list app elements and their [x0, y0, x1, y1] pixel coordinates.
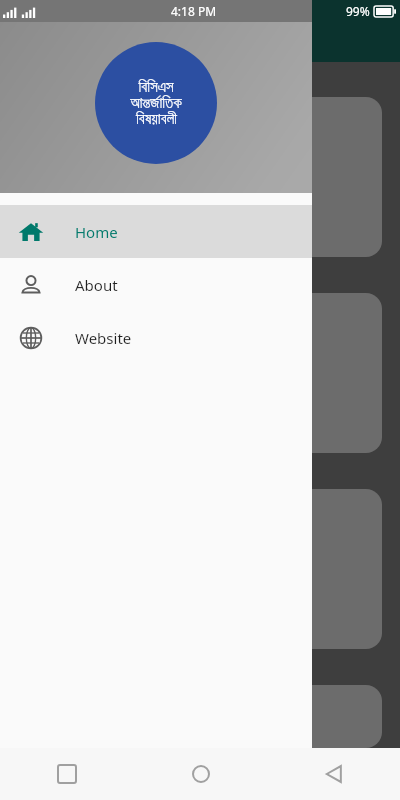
button[interactable]: Recent apps [0, 748, 134, 800]
button[interactable] [18, 685, 382, 748]
button[interactable]: হাজার হাজার [18, 293, 382, 453]
staticText: হাজার হাজার [40, 339, 107, 362]
staticText: আন্তর্জাতিক [130, 96, 182, 111]
button[interactable]: About [0, 258, 312, 311]
staticText: বিষয়াবলী প্রশ্ন [40, 174, 108, 197]
staticText: Website [75, 328, 132, 348]
staticText: বিষয়াবলী [136, 112, 177, 127]
staticText: বিসিএস [138, 80, 174, 95]
staticText: 99% [346, 3, 370, 19]
staticText: About [75, 275, 118, 295]
staticText: Home [75, 222, 118, 242]
button[interactable]: Home [0, 205, 312, 258]
button[interactable]: Website [0, 311, 312, 364]
button[interactable]: আন্তর্জাতিক [18, 97, 382, 257]
staticText: 4:18 PM [171, 3, 217, 19]
button[interactable]: Home [134, 748, 267, 800]
button[interactable]: Back [267, 748, 400, 800]
button[interactable]: বাংলাদেশের [18, 489, 382, 649]
